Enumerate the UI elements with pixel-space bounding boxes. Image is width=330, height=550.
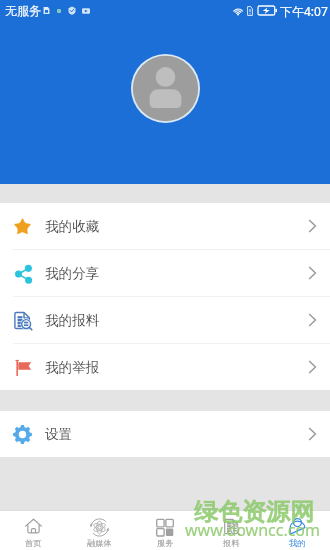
staticText: 报料 — [223, 538, 240, 548]
button[interactable]: 服务 — [132, 511, 198, 550]
staticText: 我的收藏 — [45, 218, 100, 235]
button[interactable]: 首页 — [0, 511, 66, 550]
staticText: 我的举报 — [45, 359, 100, 376]
staticText: www.downcc.com — [185, 519, 321, 541]
button[interactable]: 我的举报 — [0, 344, 330, 390]
button[interactable]: 设置 — [0, 411, 330, 457]
staticText: 服务 — [157, 538, 174, 548]
staticText: 无服务 — [5, 3, 41, 18]
button[interactable]: 我的 — [264, 511, 330, 550]
button[interactable]: 报料 — [198, 511, 264, 550]
staticText: 我的报料 — [45, 312, 100, 329]
staticText: 融媒体 — [87, 538, 112, 548]
button[interactable]: 我的分享 — [0, 250, 330, 296]
button[interactable]: 融媒体 — [66, 511, 132, 550]
button[interactable]: 我的收藏 — [0, 203, 330, 249]
staticText: 绿色资源网 — [194, 497, 314, 527]
staticText: 下午4:07 — [280, 3, 328, 19]
staticText: 设置 — [45, 426, 73, 443]
staticText: 首页 — [25, 538, 42, 548]
button[interactable]: 我的报料 — [0, 297, 330, 343]
staticText: 我的 — [289, 538, 306, 548]
staticText: 我的分享 — [45, 265, 100, 282]
